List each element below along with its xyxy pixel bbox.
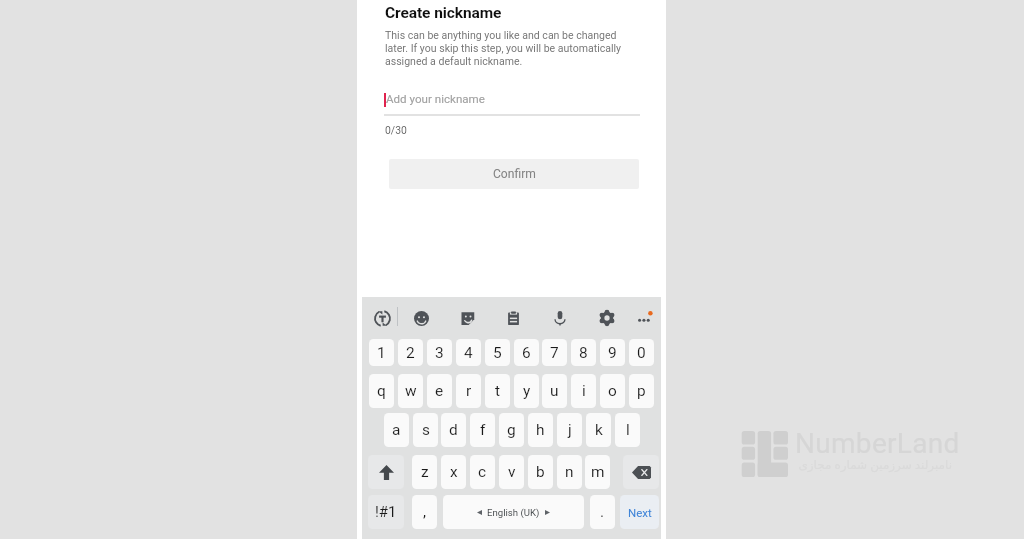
button[interactable]: 4 xyxy=(456,339,481,366)
staticText: 3 xyxy=(435,344,444,362)
button[interactable]: o xyxy=(600,374,625,408)
button[interactable]: i xyxy=(571,374,596,408)
staticText: f xyxy=(480,421,486,439)
staticText: t xyxy=(495,382,501,400)
staticText: 7 xyxy=(550,344,559,362)
staticText: u xyxy=(550,382,559,400)
staticText: v xyxy=(508,463,516,481)
staticText: 6 xyxy=(522,344,531,362)
staticText: h xyxy=(536,421,545,439)
button[interactable]: k xyxy=(586,413,611,447)
button[interactable]: . xyxy=(590,495,615,529)
staticText: 0/30 xyxy=(385,124,407,136)
staticText: z xyxy=(421,463,429,481)
button[interactable]: t xyxy=(485,374,510,408)
button[interactable]: 9 xyxy=(600,339,625,366)
button[interactable]: x xyxy=(441,455,466,489)
button[interactable]: Shift xyxy=(368,455,404,489)
button[interactable]: , xyxy=(412,495,437,529)
staticText: 0 xyxy=(637,344,646,362)
staticText: w xyxy=(405,382,417,400)
staticText: c xyxy=(478,463,487,481)
staticText: Add your nickname xyxy=(386,92,485,106)
button[interactable]: u xyxy=(542,374,567,408)
button[interactable]: y xyxy=(514,374,539,408)
button[interactable]: w xyxy=(398,374,423,408)
button[interactable]: Confirm xyxy=(389,159,639,189)
button[interactable]: q xyxy=(369,374,394,408)
staticText: English (UK) xyxy=(487,507,540,518)
staticText: k xyxy=(595,421,603,439)
button[interactable]: Translate xyxy=(369,305,395,331)
button[interactable]: r xyxy=(456,374,481,408)
staticText: q xyxy=(377,382,386,400)
staticText: Create nickname xyxy=(385,4,502,22)
staticText: l xyxy=(626,421,630,439)
staticText: 8 xyxy=(579,344,588,362)
button[interactable]: l xyxy=(615,413,640,447)
staticText: o xyxy=(608,382,617,400)
button[interactable]: n xyxy=(557,455,582,489)
button[interactable]: 1 xyxy=(369,339,394,366)
button[interactable]: m xyxy=(585,455,610,489)
button[interactable]: Next xyxy=(620,495,659,529)
staticText: n xyxy=(565,463,574,481)
staticText: e xyxy=(435,382,444,400)
button[interactable]: p xyxy=(629,374,654,408)
button[interactable]: Stickers xyxy=(454,305,480,331)
button[interactable]: b xyxy=(528,455,553,489)
button[interactable]: s xyxy=(413,413,438,447)
button[interactable]: Voice input xyxy=(547,305,573,331)
button[interactable]: h xyxy=(528,413,553,447)
button[interactable]: v xyxy=(499,455,524,489)
button[interactable]: Backspace xyxy=(623,455,659,489)
staticText: 5 xyxy=(493,344,502,362)
staticText: Confirm xyxy=(493,167,536,181)
button[interactable]: Emoji xyxy=(408,305,434,331)
staticText: y xyxy=(523,382,531,400)
staticText: j xyxy=(568,421,572,439)
staticText: d xyxy=(449,421,458,439)
button[interactable]: a xyxy=(384,413,409,447)
button[interactable]: 7 xyxy=(542,339,567,366)
staticText: !#1 xyxy=(375,503,397,521)
button[interactable]: Clipboard xyxy=(500,305,526,331)
staticText: r xyxy=(466,382,472,400)
button[interactable]: 5 xyxy=(485,339,510,366)
staticText: . xyxy=(600,503,605,521)
button[interactable]: Keyboard settings xyxy=(594,305,620,331)
button[interactable]: j xyxy=(557,413,582,447)
button[interactable]: Space xyxy=(443,495,584,529)
button[interactable]: g xyxy=(499,413,524,447)
button[interactable]: 0 xyxy=(629,339,654,366)
staticText: p xyxy=(637,382,646,400)
button[interactable]: 8 xyxy=(571,339,596,366)
staticText: a xyxy=(392,421,401,439)
staticText: 1 xyxy=(377,344,386,362)
button[interactable]: !#1 xyxy=(368,495,404,529)
staticText: , xyxy=(423,503,427,521)
button[interactable]: 6 xyxy=(514,339,539,366)
button[interactable]: d xyxy=(441,413,466,447)
staticText: b xyxy=(536,463,545,481)
staticText: NumberLand xyxy=(795,427,960,460)
button[interactable]: 3 xyxy=(427,339,452,366)
button[interactable]: e xyxy=(427,374,452,408)
button[interactable]: z xyxy=(412,455,437,489)
staticText: g xyxy=(507,421,516,439)
staticText: Next xyxy=(628,506,652,519)
button[interactable]: 2 xyxy=(398,339,423,366)
button[interactable]: More options xyxy=(632,305,658,331)
staticText: i xyxy=(582,382,586,400)
staticText: 2 xyxy=(406,344,415,362)
staticText: x xyxy=(450,463,458,481)
staticText: m xyxy=(591,463,605,481)
button[interactable]: f xyxy=(470,413,495,447)
button[interactable]: Add your nickname xyxy=(384,89,640,121)
button[interactable]: c xyxy=(470,455,495,489)
staticText: This can be anything you like and can be… xyxy=(385,29,623,68)
staticText: 9 xyxy=(608,344,617,362)
staticText: s xyxy=(422,421,430,439)
staticText: 4 xyxy=(464,344,473,362)
